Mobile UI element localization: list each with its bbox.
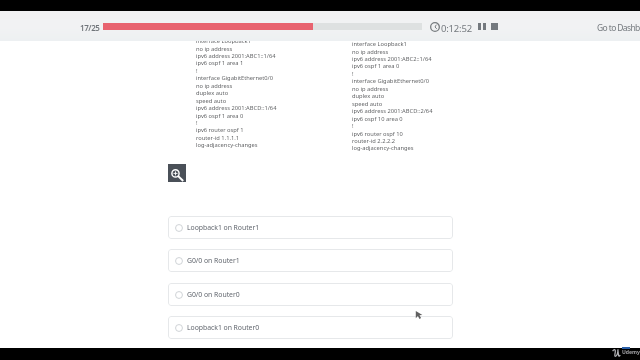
staticText: ipv6 ospf 1 area 1 xyxy=(196,59,244,67)
staticText: ipv6 address 2001:ABCD::2/64 xyxy=(352,107,433,115)
staticText: interface GigabitEthernet0/0 xyxy=(196,74,273,82)
staticText: ipv6 router ospf 10 xyxy=(352,130,403,138)
staticText: Udemy xyxy=(622,349,640,356)
staticText: 17/25 xyxy=(80,22,100,33)
button[interactable]: Loopback1 on Router1 xyxy=(168,216,453,239)
staticText: interface Loopback1 xyxy=(352,40,407,48)
staticText: duplex auto xyxy=(352,92,385,100)
staticText: ipv6 address 2001:ABC2::1/64 xyxy=(352,55,432,63)
staticText: ipv6 address 2001:ABC1::1/64 xyxy=(196,52,276,60)
staticText: Loopback1 on Router1 xyxy=(187,223,260,232)
staticText: interface Loopback1 xyxy=(196,37,251,45)
staticText: no ip address xyxy=(352,85,389,93)
staticText: ipv6 ospf 1 area 0 xyxy=(196,112,244,120)
staticText: Loopback1 on Router0 xyxy=(187,323,260,332)
staticText: ! xyxy=(352,122,354,130)
staticText: ipv6 router ospf 1 xyxy=(196,126,244,134)
staticText: router-id 1.1.1.1 xyxy=(196,134,240,142)
staticText: duplex auto xyxy=(196,89,229,97)
staticText: interface GigabitEthernet0/0 xyxy=(352,77,429,85)
staticText: ipv6 ospf 10 area 0 xyxy=(352,115,403,123)
button[interactable]: Go to Dashboard xyxy=(597,22,640,34)
button[interactable]: G0/0 on Router0 xyxy=(168,283,453,306)
staticText: ipv6 ospf 1 area 0 xyxy=(352,62,400,70)
button[interactable]: G0/0 on Router1 xyxy=(168,249,453,272)
staticText: ipv6 address 2001:ABCD::1/64 xyxy=(196,104,277,112)
staticText: speed auto xyxy=(196,97,227,105)
staticText: no ip address xyxy=(196,45,233,53)
staticText: no ip address xyxy=(352,48,389,56)
staticText: speed auto xyxy=(352,100,383,108)
staticText: log-adjacency-changes xyxy=(352,144,414,152)
staticText: no ip address xyxy=(196,82,233,90)
staticText: ! xyxy=(196,67,198,75)
staticText: ! xyxy=(196,119,198,127)
staticText: G0/0 on Router1 xyxy=(187,256,240,265)
staticText: log-adjacency-changes xyxy=(196,141,258,149)
staticText: ! xyxy=(352,70,354,78)
staticText: router-id 2.2.2.2 xyxy=(352,137,396,145)
staticText: G0/0 on Router0 xyxy=(187,290,240,299)
staticText: 0:12:52 xyxy=(441,22,472,35)
button[interactable]: Pause timer xyxy=(478,23,486,30)
button[interactable]: Zoom in xyxy=(168,164,186,182)
button[interactable]: Loopback1 on Router0 xyxy=(168,316,453,339)
